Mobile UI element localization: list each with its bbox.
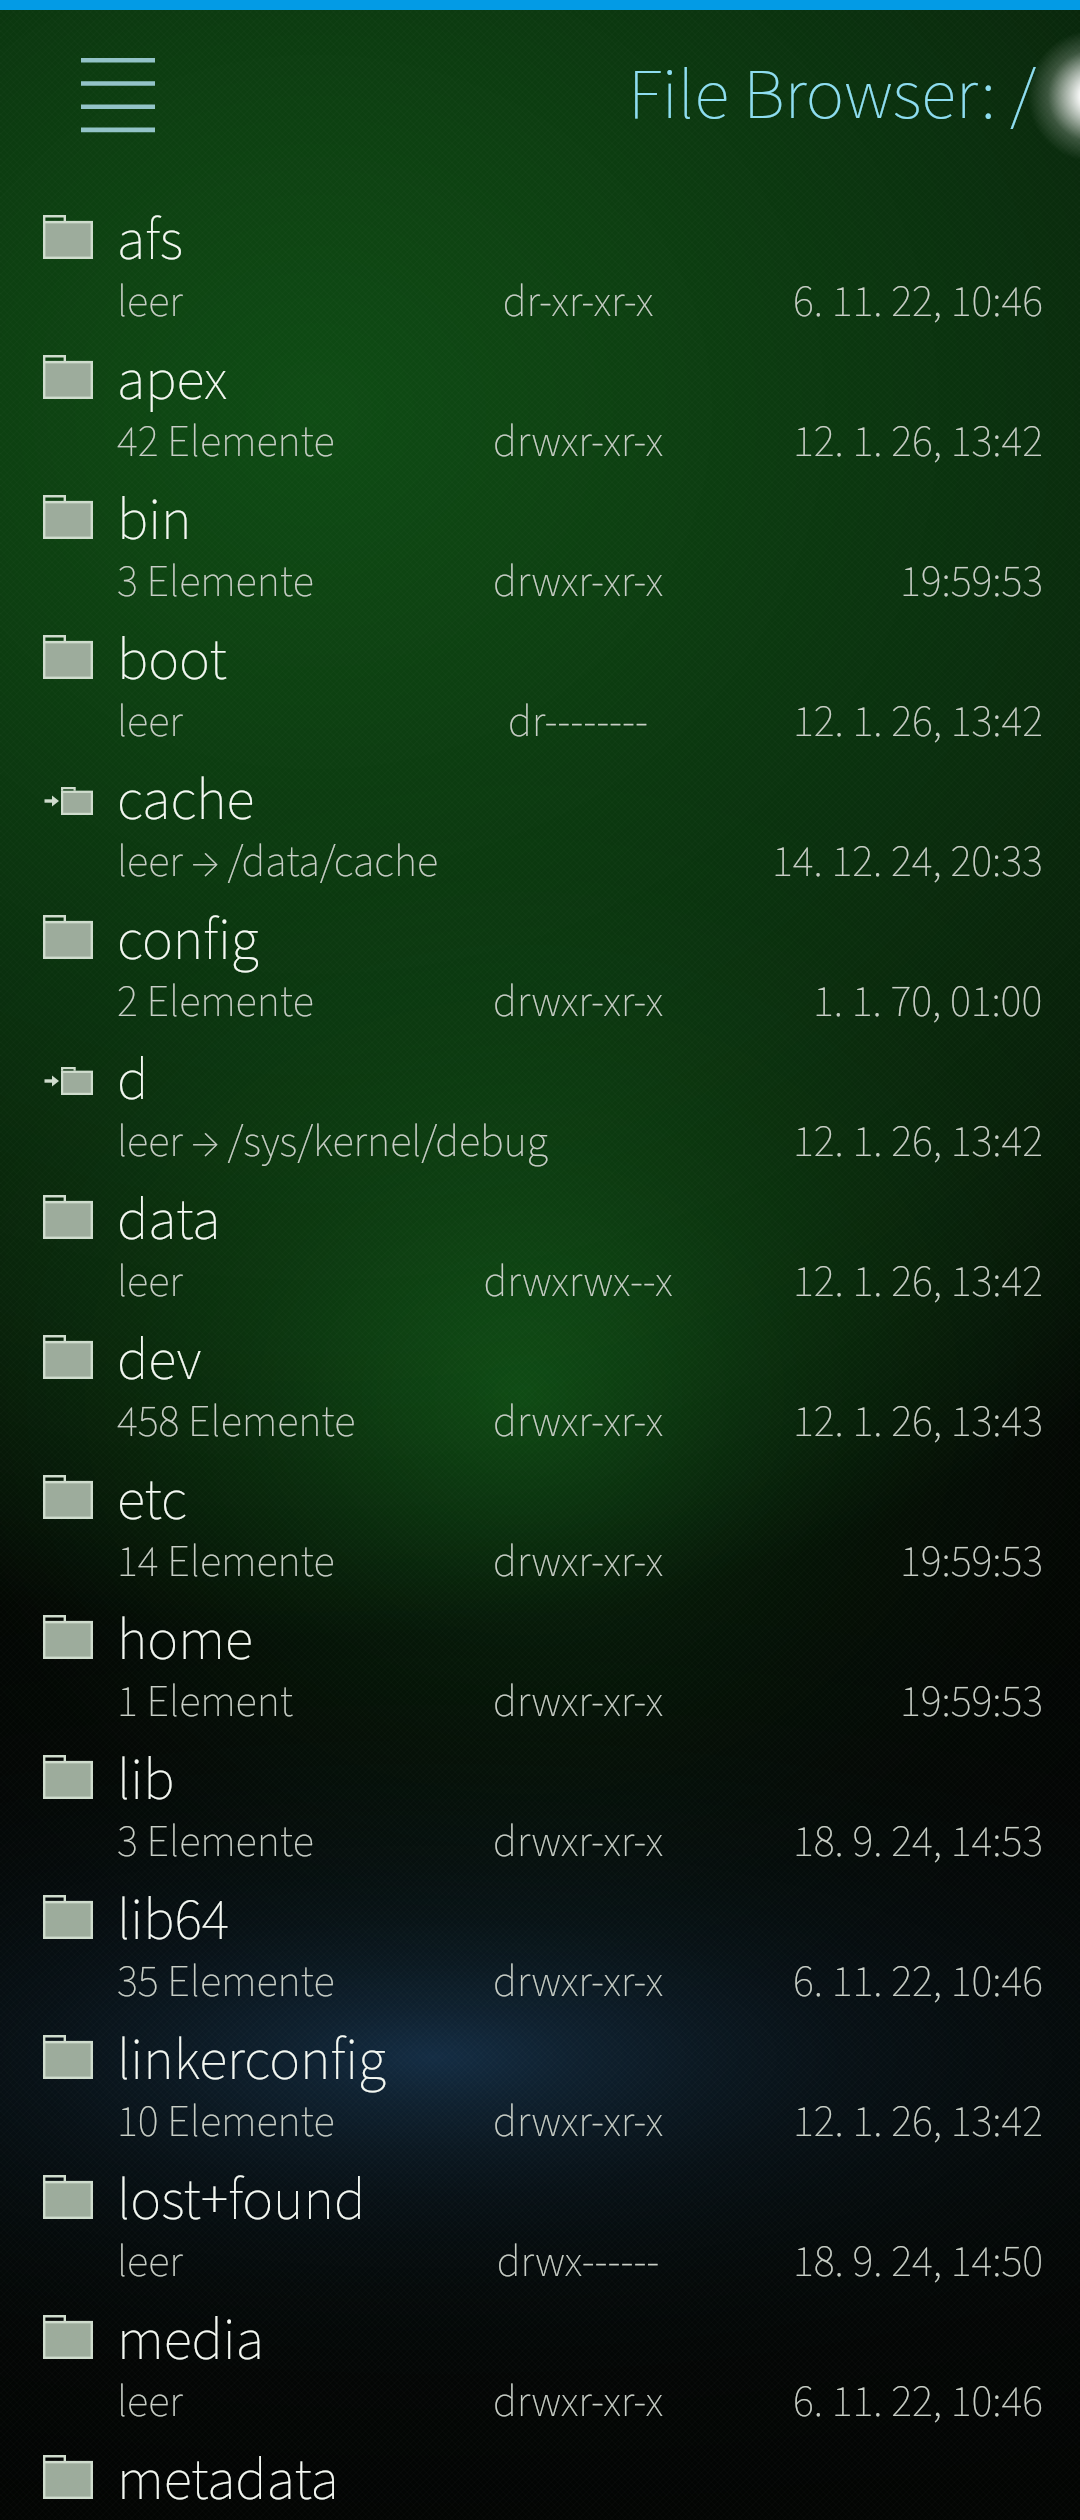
button[interactable]: dev bbox=[0, 1306, 1080, 1446]
staticText: leer bbox=[117, 691, 183, 754]
staticText: 12. 1. 26, 13:42 bbox=[793, 1251, 1043, 1314]
staticText: apex bbox=[117, 340, 227, 423]
staticText: 6. 11. 22, 10:46 bbox=[793, 271, 1043, 334]
staticText: leer bbox=[117, 2371, 183, 2434]
staticText: drwxr-xr-x bbox=[378, 2091, 778, 2154]
staticText: 12. 1. 26, 13:42 bbox=[793, 1111, 1043, 1174]
staticText: media bbox=[117, 2300, 264, 2383]
button[interactable]: cache bbox=[0, 746, 1080, 886]
staticText: drwxr-xr-x bbox=[378, 1951, 778, 2014]
staticText: linkerconfig bbox=[117, 2020, 386, 2103]
staticText: leer bbox=[117, 271, 183, 334]
staticText: File Browser: / bbox=[628, 44, 1036, 147]
button[interactable]: etc bbox=[0, 1446, 1080, 1586]
staticText: drwxr-xr-x bbox=[378, 1811, 778, 1874]
button[interactable]: lost+found bbox=[0, 2146, 1080, 2286]
staticText: 10 Elemente bbox=[117, 2091, 335, 2154]
staticText: drwxr-xr-x bbox=[378, 2371, 778, 2434]
staticText: config bbox=[117, 900, 259, 983]
button[interactable]: lib64 bbox=[0, 1866, 1080, 2006]
staticText: 19:59:53 bbox=[900, 1531, 1043, 1594]
staticText: drwxr-xr-x bbox=[378, 1391, 778, 1454]
staticText: 14 Elemente bbox=[117, 1531, 335, 1594]
button[interactable]: media bbox=[0, 2286, 1080, 2426]
staticText: 458 Elemente bbox=[117, 1391, 356, 1454]
staticText: dr-xr-xr-x bbox=[378, 271, 778, 334]
staticText: metadata bbox=[117, 2440, 339, 2520]
staticText: drwxr-xr-x bbox=[378, 971, 778, 1034]
button[interactable]: linkerconfig bbox=[0, 2006, 1080, 2146]
staticText: drwx------ bbox=[378, 2231, 778, 2294]
staticText: 6. 11. 22, 10:46 bbox=[793, 1951, 1043, 2014]
staticText: lib bbox=[117, 1740, 175, 1823]
staticText: 3 Elemente bbox=[117, 551, 314, 614]
staticText: home bbox=[117, 1600, 253, 1683]
staticText: dr-------- bbox=[378, 691, 778, 754]
button[interactable]: home bbox=[0, 1586, 1080, 1726]
staticText: 12. 1. 26, 13:42 bbox=[793, 691, 1043, 754]
staticText: dev bbox=[117, 1320, 202, 1403]
button[interactable]: lib bbox=[0, 1726, 1080, 1866]
button[interactable]: apex bbox=[0, 326, 1080, 466]
staticText: d bbox=[117, 1040, 149, 1123]
staticText: 12. 1. 26, 13:42 bbox=[793, 411, 1043, 474]
button[interactable]: bin bbox=[0, 466, 1080, 606]
button[interactable]: data bbox=[0, 1166, 1080, 1306]
staticText: drwxrwx--x bbox=[378, 1251, 778, 1314]
staticText: afs bbox=[117, 200, 184, 283]
staticText: bin bbox=[117, 480, 192, 563]
staticText: 19:59:53 bbox=[900, 551, 1043, 614]
staticText: leer → /data/cache bbox=[117, 831, 438, 894]
button[interactable]: d bbox=[0, 1026, 1080, 1166]
staticText: 42 Elemente bbox=[117, 411, 335, 474]
button[interactable]: metadata bbox=[0, 2426, 1080, 2520]
staticText: data bbox=[117, 1180, 221, 1263]
staticText: drwxr-xr-x bbox=[378, 1531, 778, 1594]
staticText: 1 Element bbox=[117, 1671, 294, 1734]
staticText: 1. 1. 70, 01:00 bbox=[813, 971, 1043, 1034]
staticText: etc bbox=[117, 1460, 187, 1543]
staticText: 12. 1. 26, 13:43 bbox=[793, 1391, 1043, 1454]
staticText: drwxr-xr-x bbox=[378, 551, 778, 614]
staticText: 2 Elemente bbox=[117, 971, 314, 1034]
button[interactable]: boot bbox=[0, 606, 1080, 746]
staticText: 12. 1. 26, 13:42 bbox=[793, 2091, 1043, 2154]
staticText: 18. 9. 24, 14:53 bbox=[793, 1811, 1043, 1874]
staticText: 14. 12. 24, 20:33 bbox=[772, 831, 1043, 894]
staticText: lost+found bbox=[117, 2160, 366, 2243]
button[interactable]: afs bbox=[0, 186, 1080, 326]
staticText: leer → /sys/kernel/debug bbox=[117, 1111, 548, 1174]
button[interactable]: config bbox=[0, 886, 1080, 1026]
staticText: leer bbox=[117, 1251, 183, 1314]
staticText: 6. 11. 22, 10:46 bbox=[793, 2371, 1043, 2434]
staticText: 18. 9. 24, 14:50 bbox=[793, 2231, 1043, 2294]
staticText: lib64 bbox=[117, 1880, 230, 1963]
staticText: 3 Elemente bbox=[117, 1811, 314, 1874]
staticText: 19:59:53 bbox=[900, 1671, 1043, 1734]
staticText: boot bbox=[117, 620, 227, 703]
staticText: leer bbox=[117, 2231, 183, 2294]
button[interactable]: Open navigation menu bbox=[56, 36, 180, 156]
staticText: drwxr-xr-x bbox=[378, 1671, 778, 1734]
staticText: 35 Elemente bbox=[117, 1951, 335, 2014]
staticText: cache bbox=[117, 760, 255, 843]
staticText: drwxr-xr-x bbox=[378, 411, 778, 474]
